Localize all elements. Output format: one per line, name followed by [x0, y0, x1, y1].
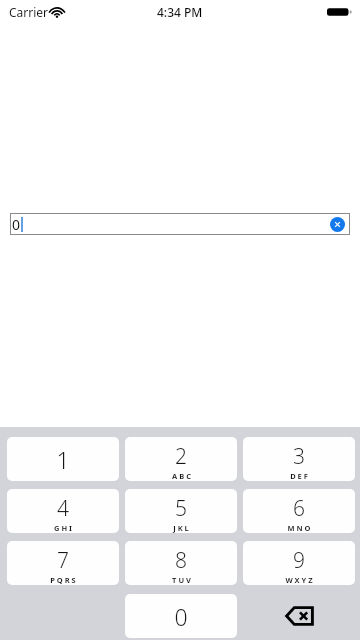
staticText: M N O — [287, 523, 311, 533]
button[interactable]: 7 — [7, 541, 119, 585]
button[interactable]: 0 — [125, 594, 237, 638]
staticText: D E F — [290, 471, 308, 481]
button[interactable]: 3 — [243, 437, 355, 481]
staticText: 0 — [174, 601, 188, 632]
button[interactable]: 8 — [125, 541, 237, 585]
button[interactable]: Backspace — [243, 594, 355, 638]
button[interactable]: 0 — [10, 213, 350, 235]
staticText: 8 — [175, 546, 187, 575]
button[interactable]: Clear text — [330, 217, 345, 232]
staticText: A B C — [172, 471, 191, 481]
staticText: T U V — [172, 575, 191, 585]
button[interactable]: 5 — [125, 489, 237, 533]
staticText: 2 — [175, 442, 187, 471]
staticText: 6 — [293, 494, 305, 523]
button[interactable]: 2 — [125, 437, 237, 481]
button[interactable]: 6 — [243, 489, 355, 533]
button[interactable]: 1 — [7, 437, 119, 481]
button[interactable]: 4 — [7, 489, 119, 533]
staticText: P Q R S — [50, 575, 76, 585]
staticText: 7 — [57, 546, 69, 575]
staticText: G H I — [54, 523, 72, 533]
staticText: 9 — [293, 546, 305, 575]
staticText: J K L — [173, 523, 189, 533]
staticText: 4 — [57, 494, 69, 523]
staticText: 1 — [56, 444, 70, 475]
button[interactable]: 9 — [243, 541, 355, 585]
staticText: Carrier — [9, 4, 49, 20]
staticText: 3 — [293, 442, 305, 471]
staticText: W X Y Z — [285, 575, 313, 585]
staticText: 4:34 PM — [157, 4, 203, 20]
staticText: 0 — [12, 215, 21, 234]
staticText: 5 — [175, 494, 187, 523]
